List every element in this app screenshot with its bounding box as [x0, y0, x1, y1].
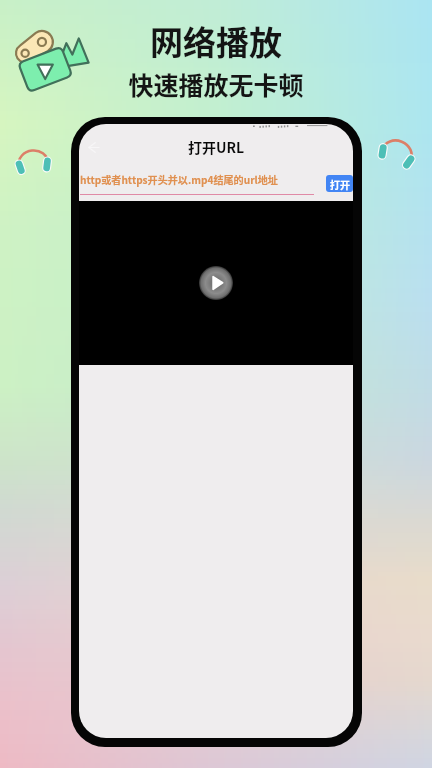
staticText: 打开 — [330, 177, 350, 191]
staticText: 打开URL — [188, 137, 245, 157]
button[interactable]: Play — [199, 266, 233, 300]
staticText: 快速播放无卡顿 — [128, 66, 304, 102]
staticText: http或者https开头并以.mp4结尾的url地址 — [80, 172, 278, 187]
button[interactable]: 打开 — [326, 175, 353, 192]
staticText: 网络播放 — [150, 17, 282, 65]
button[interactable]: Back — [79, 134, 105, 160]
